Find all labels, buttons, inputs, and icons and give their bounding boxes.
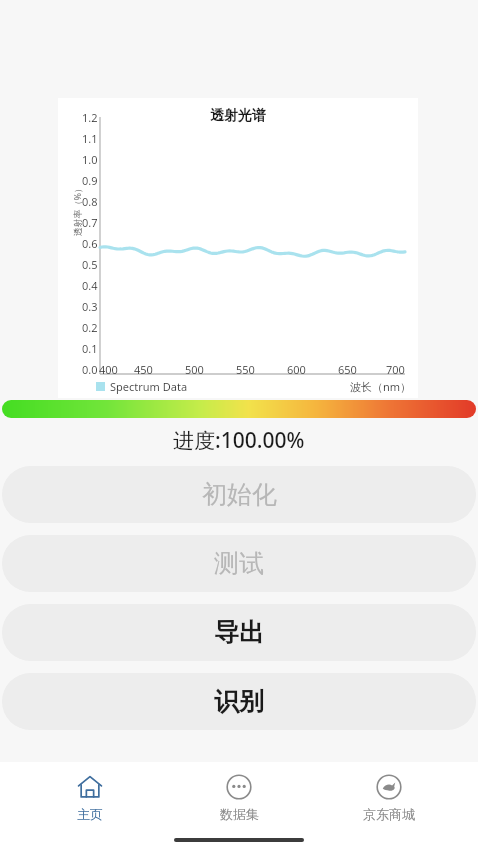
button[interactable]: 导出	[2, 604, 476, 661]
staticText: 550	[236, 362, 255, 377]
staticText: 透射率（%）	[70, 183, 82, 236]
staticText: Spectrum Data	[110, 379, 188, 394]
staticText: 0.1	[82, 341, 98, 356]
button[interactable]: 识别	[2, 673, 476, 730]
staticText: 600	[287, 362, 306, 377]
button[interactable]: 测试	[2, 535, 476, 592]
staticText: 1.0	[82, 152, 98, 167]
staticText: 1.2	[82, 110, 98, 125]
button[interactable]: 数据集	[179, 770, 299, 826]
staticText: 650	[338, 362, 357, 377]
button[interactable]: 主页	[30, 770, 150, 826]
staticText: 0.3	[82, 299, 98, 314]
staticText: 进度:100.00%	[173, 426, 305, 455]
staticText: 1.1	[82, 131, 98, 146]
staticText: 0.4	[82, 278, 98, 293]
staticText: 数据集	[220, 806, 259, 822]
staticText: 0.5	[82, 257, 98, 272]
staticText: 识别	[214, 686, 264, 717]
other: 主页	[77, 774, 103, 800]
staticText: 波长（nm）	[350, 379, 412, 394]
other: 数据集	[226, 774, 252, 800]
staticText: 0.7	[82, 215, 98, 230]
staticText: 500	[185, 362, 204, 377]
staticText: 测试	[214, 548, 264, 579]
staticText: 0.2	[82, 320, 98, 335]
staticText: 初始化	[202, 479, 277, 510]
staticText: 主页	[77, 806, 103, 822]
staticText: 0.6	[82, 236, 98, 251]
button[interactable]: 初始化	[2, 466, 476, 523]
other: 京东商城	[376, 774, 402, 800]
button[interactable]: 京东商城	[329, 770, 449, 826]
staticText: 400	[99, 362, 118, 377]
staticText: 导出	[214, 617, 264, 648]
staticText: 700	[386, 362, 405, 377]
staticText: 0.0	[82, 362, 98, 377]
staticText: 京东商城	[363, 806, 415, 822]
staticText: 透射光谱	[210, 107, 266, 125]
staticText: 0.8	[82, 194, 98, 209]
staticText: 0.9	[82, 173, 98, 188]
staticText: 450	[134, 362, 153, 377]
